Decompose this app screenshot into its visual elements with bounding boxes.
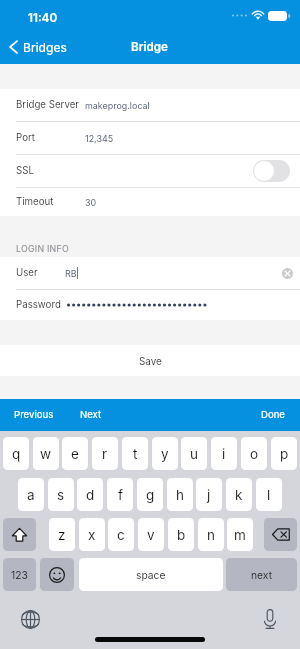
button[interactable]: Bridge Server: [0, 89, 300, 121]
staticText: Bridges: [23, 40, 67, 55]
button[interactable]: n: [198, 518, 224, 551]
button[interactable]: j: [196, 478, 222, 511]
staticText: e: [71, 446, 79, 462]
button[interactable]: Port: [0, 122, 300, 154]
button[interactable]: i: [211, 437, 237, 470]
button[interactable]: Backspace: [264, 518, 297, 551]
staticText: next: [251, 569, 273, 581]
staticText: b: [177, 527, 186, 543]
staticText: Next: [80, 409, 102, 421]
button[interactable]: p: [271, 437, 297, 470]
staticText: 12,345: [85, 133, 114, 144]
staticText: y: [161, 446, 169, 462]
staticText: m: [234, 527, 246, 543]
staticText: f: [118, 487, 123, 503]
button[interactable]: Bridges: [0, 34, 77, 60]
button[interactable]: y: [152, 437, 178, 470]
button[interactable]: a: [18, 478, 44, 511]
staticText: Port: [16, 132, 35, 144]
button[interactable]: m: [227, 518, 253, 551]
button[interactable]: g: [137, 478, 163, 511]
button[interactable]: e: [62, 437, 88, 470]
button[interactable]: s: [48, 478, 74, 511]
button[interactable]: k: [226, 478, 252, 511]
staticText: z: [58, 527, 66, 543]
staticText: n: [207, 527, 215, 543]
staticText: Password: [16, 299, 61, 311]
button[interactable]: Next: [71, 402, 111, 428]
staticText: Done: [261, 409, 285, 421]
staticText: p: [280, 446, 289, 462]
button[interactable]: User: [0, 257, 300, 289]
button[interactable]: next: [226, 558, 297, 591]
button[interactable]: Timeout: [0, 188, 300, 216]
button[interactable]: Done: [246, 402, 300, 428]
button[interactable]: Password: [0, 290, 300, 320]
button[interactable]: r: [92, 437, 118, 470]
button[interactable]: u: [181, 437, 207, 470]
staticText: SSL: [16, 165, 34, 177]
button[interactable]: q: [3, 437, 29, 470]
staticText: l: [267, 487, 271, 503]
button[interactable]: Dictation: [263, 609, 277, 629]
button[interactable]: z: [49, 518, 75, 551]
staticText: Timeout: [16, 196, 54, 208]
button[interactable]: x: [79, 518, 105, 551]
staticText: Bridge: [131, 40, 169, 54]
staticText: i: [222, 446, 226, 462]
button[interactable]: Emoji: [40, 558, 74, 591]
staticText: Previous: [14, 409, 54, 421]
button[interactable]: Save: [0, 345, 300, 376]
button[interactable]: o: [241, 437, 267, 470]
staticText: Save: [139, 355, 162, 367]
staticText: 11:40: [28, 11, 58, 25]
staticText: c: [117, 527, 125, 543]
button[interactable]: c: [108, 518, 134, 551]
button[interactable]: b: [168, 518, 194, 551]
staticText: r: [102, 446, 108, 462]
staticText: space: [136, 569, 166, 581]
staticText: t: [133, 446, 138, 462]
button[interactable]: SSL: [0, 155, 300, 187]
staticText: d: [86, 487, 95, 503]
staticText: makeprog.local: [85, 100, 150, 111]
button[interactable]: d: [77, 478, 103, 511]
button[interactable]: w: [33, 437, 59, 470]
button[interactable]: 123: [3, 558, 36, 591]
staticText: v: [147, 527, 155, 543]
button[interactable]: Previous: [0, 402, 68, 428]
button[interactable]: space: [79, 558, 223, 591]
button[interactable]: l: [256, 478, 282, 511]
button[interactable]: Change keyboard: [21, 610, 40, 629]
staticText: g: [146, 487, 155, 503]
staticText: User: [16, 267, 38, 279]
staticText: o: [250, 446, 259, 462]
staticText: RB: [65, 268, 77, 279]
button[interactable]: Shift: [3, 518, 36, 551]
button[interactable]: t: [122, 437, 148, 470]
staticText: q: [12, 446, 21, 462]
staticText: k: [235, 487, 243, 503]
staticText: x: [88, 527, 96, 543]
staticText: LOGIN INFO: [16, 243, 69, 254]
button[interactable]: f: [107, 478, 133, 511]
staticText: Bridge Server: [16, 99, 79, 111]
staticText: u: [190, 446, 198, 462]
button[interactable]: h: [167, 478, 193, 511]
staticText: 123: [11, 569, 28, 581]
staticText: h: [176, 487, 184, 503]
staticText: 30: [85, 197, 97, 208]
button[interactable]: v: [138, 518, 164, 551]
staticText: j: [207, 487, 211, 503]
staticText: a: [27, 487, 35, 503]
staticText: s: [57, 487, 65, 503]
button[interactable]: Clear text: [282, 268, 293, 279]
button[interactable]: SSL toggle: [253, 160, 290, 182]
staticText: w: [40, 446, 52, 462]
